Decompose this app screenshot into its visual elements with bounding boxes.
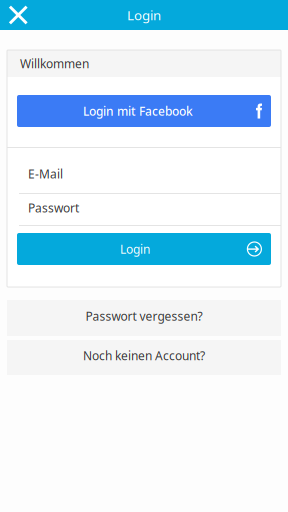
staticText: Login mit Facebook <box>83 103 193 119</box>
button[interactable]: Login mit Facebook <box>17 95 271 127</box>
button[interactable]: E-Mail <box>7 148 281 193</box>
button[interactable]: Close <box>0 0 36 30</box>
staticText: E-Mail <box>28 166 63 182</box>
staticText: Login <box>127 6 161 24</box>
button[interactable]: Noch keinen Account? <box>7 340 281 375</box>
staticText: Willkommen <box>20 55 89 71</box>
staticText: Noch keinen Account? <box>83 347 205 363</box>
staticText: Passwort vergessen? <box>85 308 202 324</box>
button[interactable]: Passwort vergessen? <box>7 300 281 336</box>
staticText: Passwort <box>28 200 79 216</box>
staticText: Login <box>120 241 150 257</box>
button[interactable]: Passwort <box>7 194 281 225</box>
button[interactable]: Login <box>17 233 271 265</box>
